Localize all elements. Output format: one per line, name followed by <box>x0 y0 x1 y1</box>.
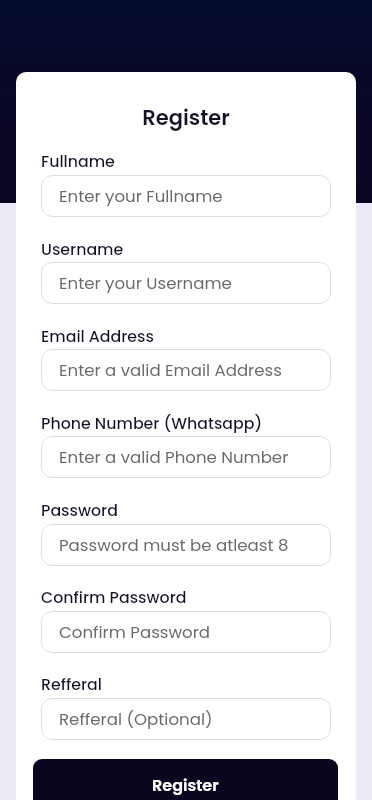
button[interactable]: Enter a valid Phone Number <box>41 436 331 478</box>
button[interactable]: Password must be atleast 8 <box>41 524 331 566</box>
button[interactable]: Enter your Username <box>41 262 331 304</box>
staticText: Register <box>0 103 372 132</box>
staticText: Enter your Username <box>59 272 232 295</box>
staticText: Enter a valid Phone Number <box>59 446 289 469</box>
button[interactable]: Enter your Fullname <box>41 175 331 217</box>
staticText: Password <box>41 499 118 521</box>
staticText: Email Address <box>41 325 154 347</box>
staticText: Fullname <box>41 150 115 172</box>
button[interactable]: Confirm Password <box>41 611 331 653</box>
staticText: Username <box>41 238 124 260</box>
button[interactable]: Register <box>33 759 338 800</box>
staticText: Confirm Password <box>41 586 187 608</box>
staticText: Register <box>152 774 219 796</box>
staticText: Enter a valid Email Address <box>59 359 282 382</box>
staticText: Enter your Fullname <box>59 185 223 208</box>
staticText: Confirm Password <box>59 621 211 644</box>
button[interactable]: Refferal (Optional) <box>41 698 331 740</box>
staticText: Password must be atleast 8 <box>59 534 289 557</box>
button[interactable]: Enter a valid Email Address <box>41 349 331 391</box>
staticText: Refferal (Optional) <box>59 708 213 731</box>
staticText: Refferal <box>41 673 102 695</box>
staticText: Phone Number (Whatsapp) <box>41 412 263 434</box>
